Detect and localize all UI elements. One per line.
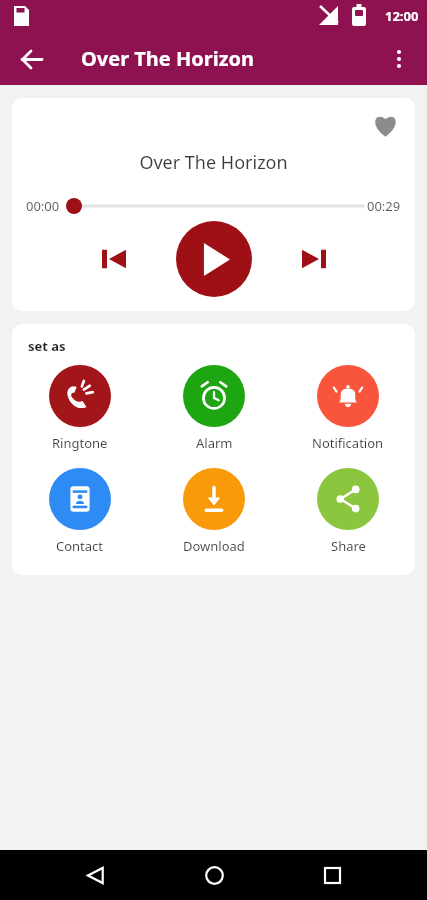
button[interactable]: Play xyxy=(176,221,252,297)
button[interactable]: Recents xyxy=(308,851,356,899)
staticText: 00:00 xyxy=(26,197,60,215)
button[interactable]: Back xyxy=(71,851,119,899)
button[interactable]: Previous xyxy=(87,232,141,286)
staticText: Share xyxy=(331,537,366,555)
staticText: Download xyxy=(183,537,245,555)
staticText: 12:00 xyxy=(385,7,419,25)
button[interactable]: Favorite xyxy=(365,104,405,144)
button[interactable]: Alarm xyxy=(147,363,281,454)
button[interactable]: Share xyxy=(281,466,415,557)
button[interactable]: Next xyxy=(287,232,341,286)
button[interactable]: Contact xyxy=(12,466,147,557)
button[interactable]: More options xyxy=(377,37,421,81)
button[interactable]: Notification xyxy=(281,363,415,454)
button[interactable]: Ringtone xyxy=(12,363,147,454)
button[interactable]: Back xyxy=(8,36,54,82)
button[interactable]: Home xyxy=(190,851,238,899)
staticText: Over The Horizon xyxy=(12,150,415,175)
staticText: Contact xyxy=(56,537,104,555)
staticText: Alarm xyxy=(196,434,233,452)
staticText: Notification xyxy=(312,434,384,452)
staticText: Over The Horizon xyxy=(81,45,255,72)
button[interactable]: Download xyxy=(147,466,281,557)
staticText: 00:29 xyxy=(367,197,401,215)
staticText: set as xyxy=(28,337,66,355)
staticText: Ringtone xyxy=(52,434,108,452)
